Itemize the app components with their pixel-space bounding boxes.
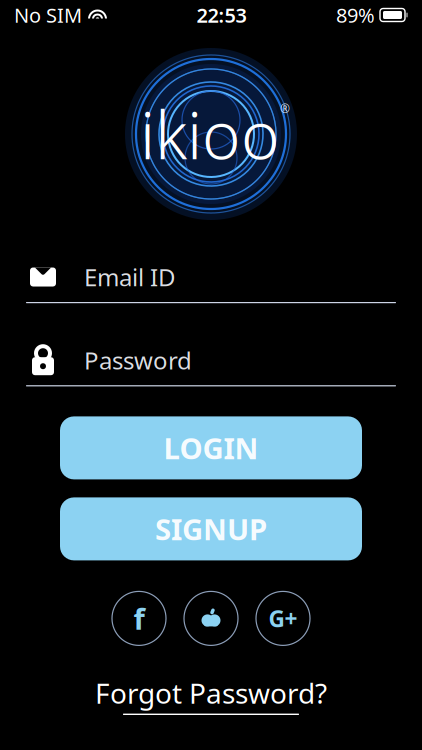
- staticText: SIGNUP: [155, 509, 267, 548]
- staticText: ®: [280, 101, 290, 116]
- staticText: Email ID: [84, 261, 176, 293]
- button[interactable]: LOGIN: [60, 416, 362, 479]
- staticText: No SIM: [14, 2, 82, 28]
- staticText: G+: [268, 603, 297, 633]
- button[interactable]: SIGNUP: [60, 497, 362, 560]
- button[interactable]: Sign in with Apple: [183, 590, 239, 646]
- staticText: Forgot Password?: [95, 674, 327, 712]
- button[interactable]: Email ID: [26, 258, 396, 303]
- button[interactable]: Sign in with Facebook: [111, 590, 167, 646]
- button[interactable]: Forgot Password?: [87, 670, 335, 719]
- staticText: LOGIN: [163, 428, 258, 467]
- button[interactable]: Password: [26, 341, 396, 386]
- staticText: ikioo: [140, 91, 280, 177]
- staticText: 22:53: [196, 2, 246, 28]
- staticText: Password: [84, 344, 192, 376]
- button[interactable]: Sign in with Google: [255, 590, 311, 646]
- staticText: f: [133, 599, 144, 638]
- staticText: 89%: [336, 2, 375, 28]
